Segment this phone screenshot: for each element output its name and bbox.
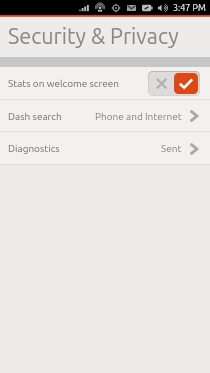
staticText: 3:47 PM (173, 3, 206, 13)
button[interactable]: Diagnostics (0, 132, 210, 165)
staticText: Stats on welcome screen (8, 78, 120, 89)
staticText: Dash search (8, 111, 62, 122)
staticText: Sent (161, 143, 182, 154)
staticText: Phone and Internet (95, 111, 182, 122)
staticText: Security & Privacy (8, 24, 179, 48)
button[interactable]: Toggle stats on welcome screen (148, 71, 200, 96)
button[interactable]: Stats on welcome screen (0, 67, 210, 100)
button[interactable]: Dash search (0, 100, 210, 132)
staticText: Diagnostics (8, 143, 60, 154)
